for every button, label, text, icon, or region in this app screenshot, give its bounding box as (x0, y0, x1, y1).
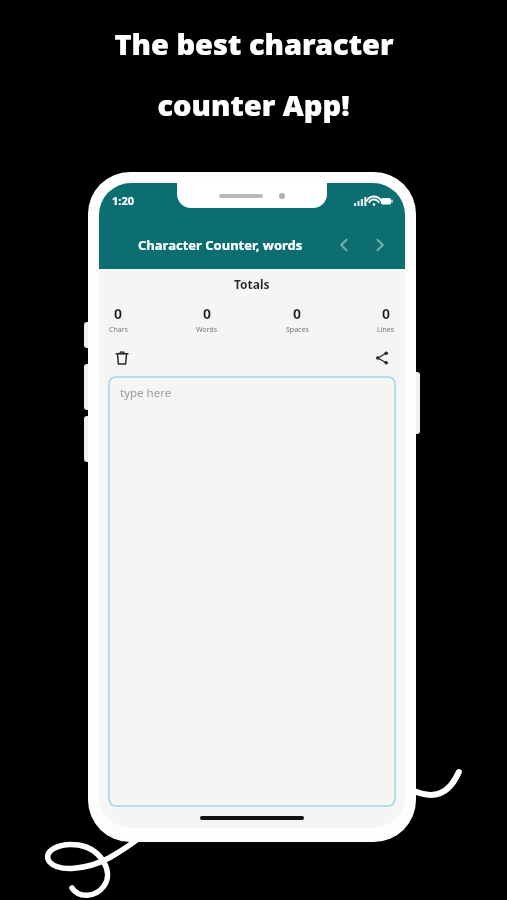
staticText: Spaces (286, 325, 309, 335)
staticText: 0 (382, 304, 391, 323)
staticText: type here (120, 385, 172, 401)
button[interactable]: Previous (329, 230, 359, 260)
staticText: 0 (114, 304, 123, 323)
staticText: The best character (114, 24, 394, 63)
staticText: Lines (377, 325, 395, 335)
staticText: Words (196, 325, 218, 335)
staticText: 0 (293, 304, 302, 323)
button[interactable]: type here (109, 377, 395, 806)
staticText: 0 (203, 304, 212, 323)
button[interactable]: Next (365, 230, 395, 260)
staticText: Chars (109, 325, 128, 335)
staticText: Totals (234, 276, 270, 292)
button[interactable]: Share (369, 345, 395, 371)
staticText: 1:20 (112, 193, 134, 208)
button[interactable]: Clear text (109, 345, 135, 371)
staticText: counter App! (157, 85, 350, 124)
staticText: Character Counter, words (138, 236, 303, 254)
